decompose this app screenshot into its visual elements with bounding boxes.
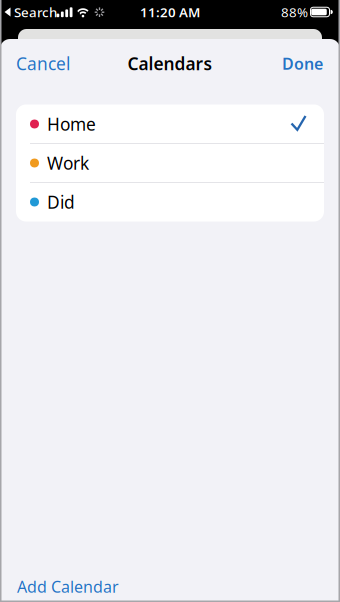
staticText: Cancel bbox=[16, 52, 70, 75]
button[interactable]: Add Calendar bbox=[17, 573, 147, 599]
staticText: Search bbox=[14, 3, 57, 21]
staticText: Home bbox=[47, 112, 96, 135]
staticText: Done bbox=[282, 53, 323, 74]
button[interactable]: Did bbox=[16, 182, 324, 221]
staticText: Work bbox=[47, 151, 89, 174]
staticText: Calendars bbox=[127, 52, 212, 75]
staticText: 88% bbox=[281, 3, 308, 21]
button[interactable]: Cancel bbox=[16, 51, 86, 75]
button[interactable]: Work bbox=[16, 143, 324, 182]
staticText: Did bbox=[47, 190, 75, 213]
button[interactable]: Done bbox=[253, 51, 323, 75]
button[interactable]: Home bbox=[16, 104, 324, 143]
button[interactable]: Back to Search bbox=[4, 4, 64, 20]
staticText: 11:20 AM bbox=[140, 3, 200, 21]
staticText: Add Calendar bbox=[17, 576, 119, 597]
